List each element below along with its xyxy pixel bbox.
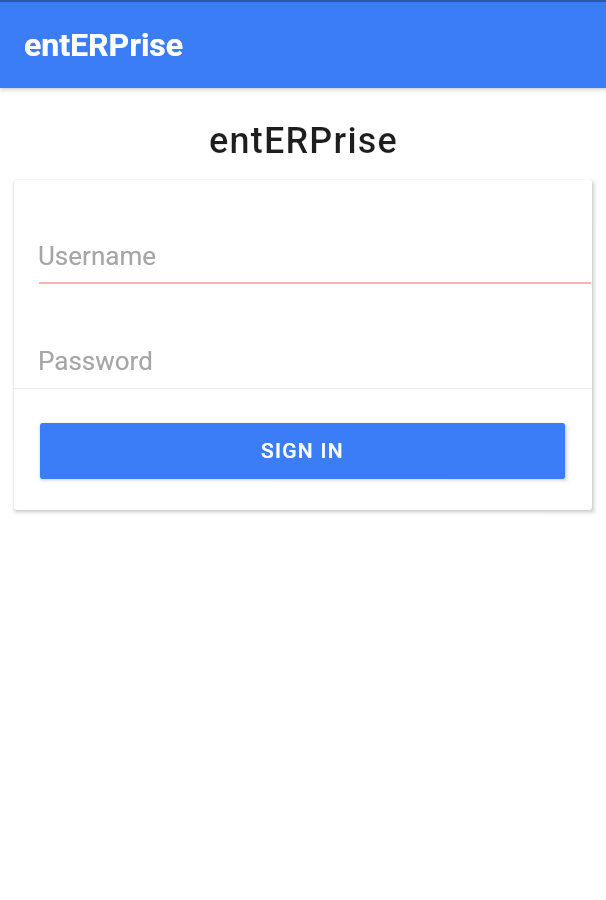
- button[interactable]: entERPrise: [0, 2, 606, 88]
- staticText: Username: [38, 241, 156, 271]
- staticText: Password: [38, 346, 153, 376]
- button[interactable]: Username input field: [14, 180, 592, 284]
- staticText: SIGN IN: [261, 439, 345, 464]
- staticText: entERPrise: [24, 26, 184, 64]
- button[interactable]: SIGN IN: [40, 423, 565, 479]
- button[interactable]: Password input field: [14, 284, 592, 388]
- staticText: entERPrise: [209, 120, 398, 162]
